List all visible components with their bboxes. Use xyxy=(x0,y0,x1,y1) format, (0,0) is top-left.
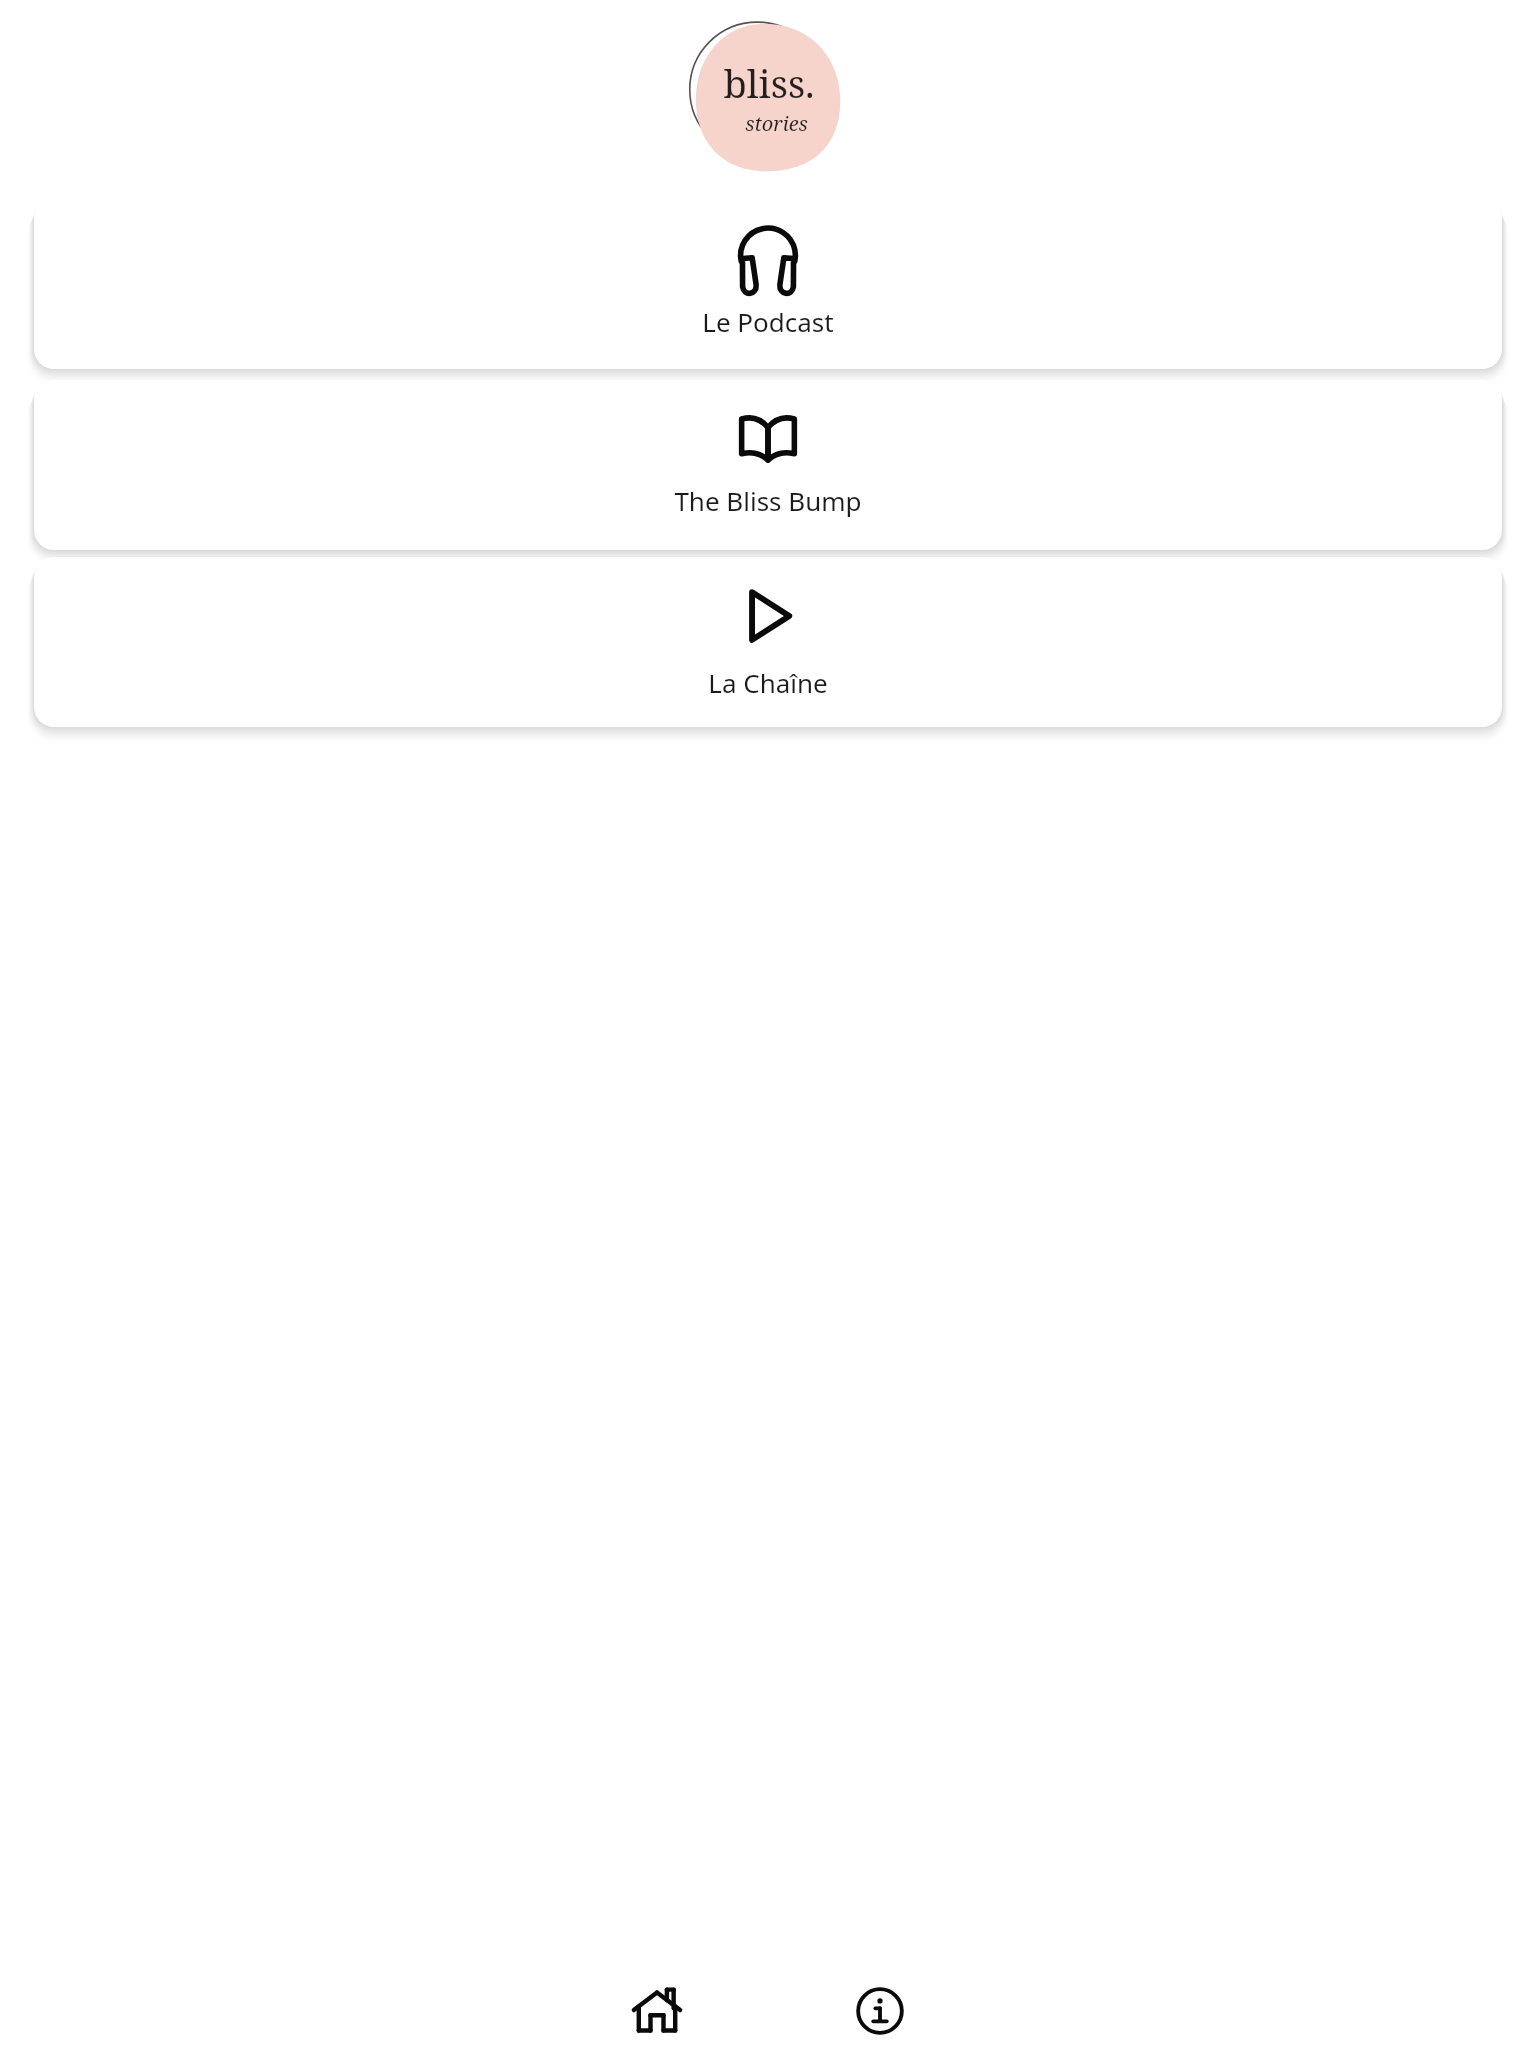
button[interactable]: The Bliss Bump xyxy=(34,380,1502,550)
staticText: stories xyxy=(745,110,808,137)
button[interactable]: Home xyxy=(601,1980,713,2042)
staticText: The Bliss Bump xyxy=(674,483,862,518)
button[interactable]: La Chaîne xyxy=(34,557,1502,727)
button[interactable]: Le Podcast xyxy=(34,199,1502,369)
button[interactable]: Information xyxy=(824,1980,936,2042)
staticText: Le Podcast xyxy=(702,304,834,339)
staticText: bliss. xyxy=(723,57,815,109)
button[interactable]: bliss. xyxy=(681,10,856,181)
staticText: La Chaîne xyxy=(708,665,828,700)
